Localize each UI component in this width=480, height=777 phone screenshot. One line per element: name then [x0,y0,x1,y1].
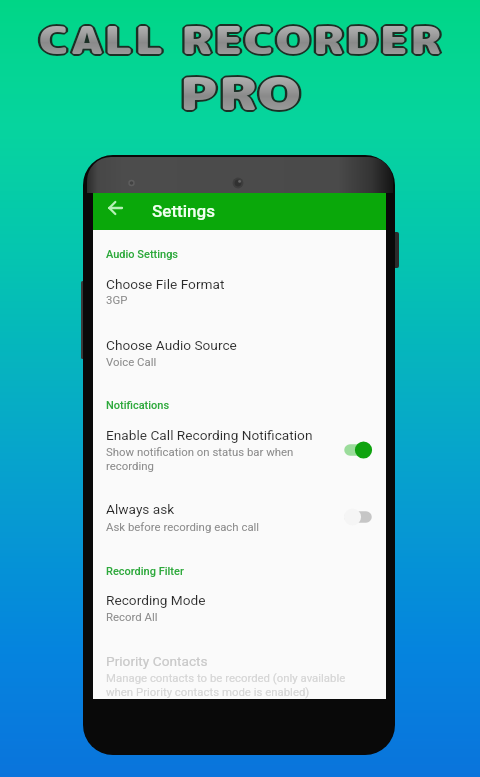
staticText: Choose Audio Source [106,337,237,353]
staticText: Audio Settings [106,248,179,261]
staticText: CALL RECORDER [0,14,480,66]
staticText: PRO [0,62,480,126]
staticText: Recording Mode [106,592,206,608]
staticText: CALL RECORDER [0,15,480,67]
staticText: CALL RECORDER [0,14,480,66]
staticText: Show notification on status bar when [106,445,294,458]
staticText: Record All [106,610,158,623]
staticText: CALL RECORDER [0,15,480,67]
button[interactable]: Priority Contacts [106,653,208,669]
button[interactable]: Switch on [344,440,372,460]
staticText: PRO [0,61,480,125]
button[interactable]: Notifications [106,399,170,412]
staticText: Recording Filter [106,565,184,578]
staticText: PRO [0,63,480,127]
staticText: PRO [0,61,480,125]
staticText: Notifications [106,399,170,412]
staticText: Enable Call Recording Notification [106,427,313,443]
staticText: 3GP [106,293,128,306]
button[interactable]: Back [103,196,127,220]
staticText: CALL RECORDER [0,13,480,65]
staticText: Settings [152,201,215,221]
staticText: CALL RECORDER [0,16,480,68]
staticText: CALL RECORDER [0,12,480,64]
staticText: PRO [0,59,480,123]
staticText: PRO [0,60,480,124]
button[interactable]: Audio Settings [106,248,179,261]
staticText: PRO [0,62,480,126]
staticText: when Priority contacts mode is enabled) [106,685,310,698]
staticText: Always ask [106,501,175,517]
staticText: Choose File Format [106,276,225,292]
staticText: recording [106,459,154,472]
button[interactable]: Recording Mode [106,592,206,608]
button[interactable]: Choose Audio Source [106,337,237,353]
staticText: Manage contacts to be recorded (only ava… [106,671,346,684]
staticText: CALL RECORDER [0,14,480,66]
button[interactable]: Enable Call Recording Notification [106,427,313,443]
button[interactable]: Choose File Format [106,276,225,292]
button[interactable]: Always ask [106,501,175,517]
button[interactable]: Switch off [344,507,372,527]
staticText: Voice Call [106,355,157,368]
button[interactable]: Recording Filter [106,565,184,578]
staticText: CALL RECORDER [0,13,480,65]
staticText: PRO [0,60,480,124]
staticText: Ask before recording each call [106,520,260,533]
staticText: Priority Contacts [106,653,208,669]
staticText: PRO [0,61,480,125]
